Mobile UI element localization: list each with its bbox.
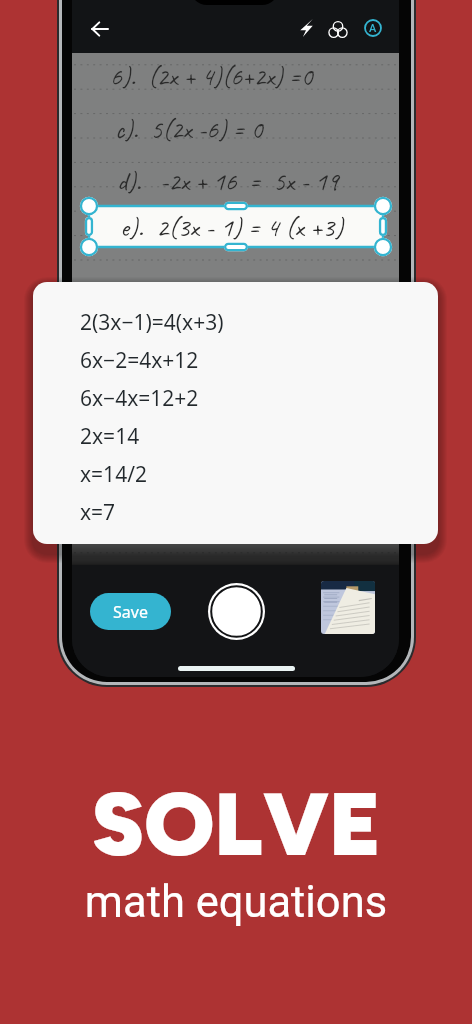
button[interactable]: Gallery (321, 581, 375, 634)
staticText: x=14/2 (80, 460, 147, 489)
button[interactable]: Flash (290, 12, 322, 44)
staticText: math equations (0, 877, 472, 928)
staticText: 2(3x−1)=4(x+3) (80, 308, 224, 337)
button[interactable]: Auto flash mode (357, 12, 389, 44)
staticText: SOLVE (0, 771, 472, 877)
button[interactable]: Color filters (322, 13, 354, 45)
button[interactable]: Save (90, 593, 171, 630)
button[interactable]: Back (84, 13, 116, 45)
staticText: d). -2x + 16 = 5x - 19 (117, 165, 339, 198)
staticText: Save (113, 601, 148, 623)
staticText: e). 2(3x - 1) = 4 (x +3) (120, 210, 344, 244)
staticText: 2x=14 (80, 422, 140, 451)
staticText: c). 5(2x -6) = 0 (115, 113, 263, 146)
staticText: A (369, 22, 377, 35)
staticText: 6). (2x + 4)(6+2x) =0 (110, 60, 313, 93)
staticText: x=7 (80, 498, 116, 527)
staticText: 6x−2=4x+12 (80, 346, 199, 375)
staticText: 6x−4x=12+2 (80, 384, 199, 413)
button[interactable]: Shutter (208, 583, 265, 640)
